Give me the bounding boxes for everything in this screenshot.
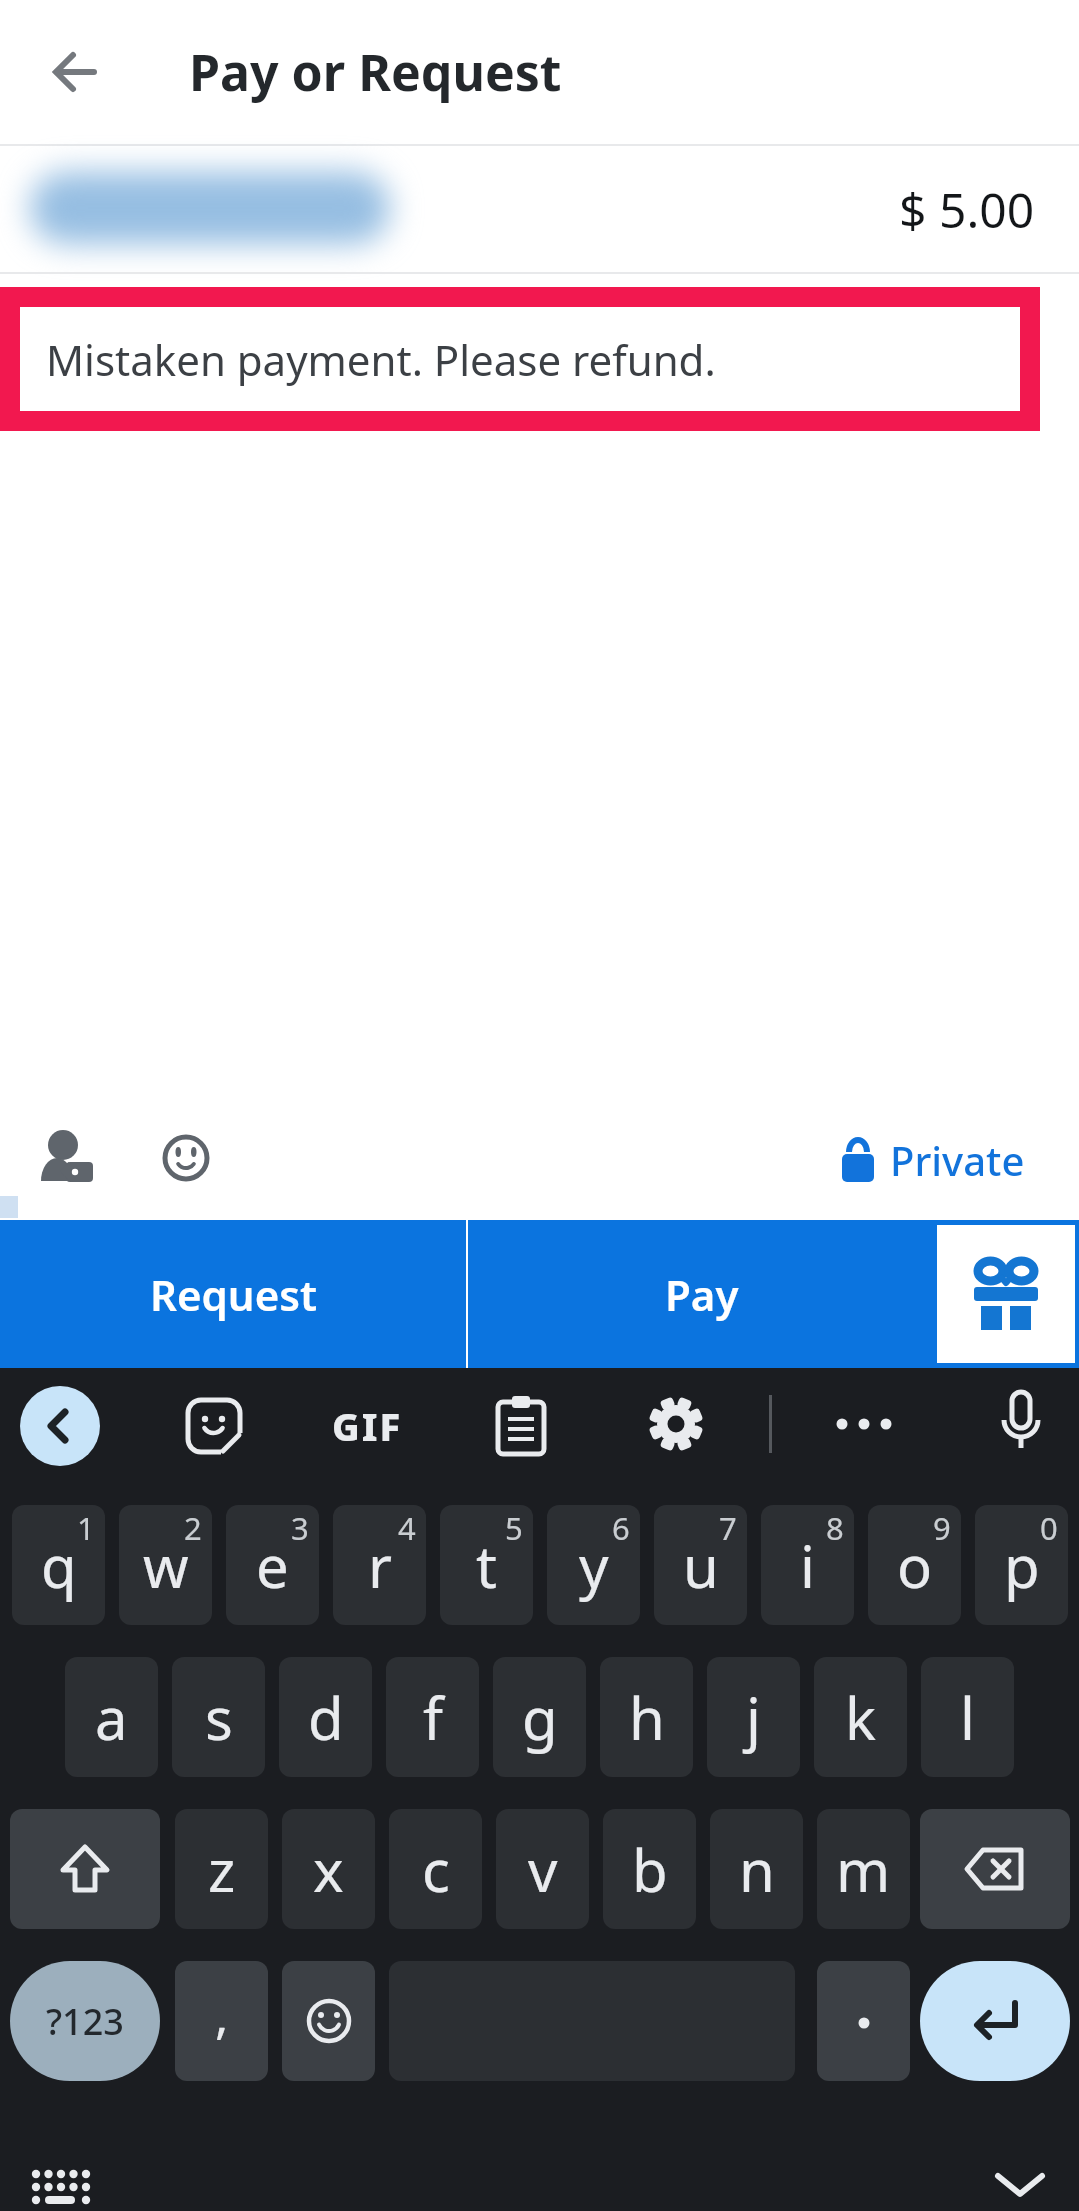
staticText: , [215,1981,229,2049]
staticText: o [897,1526,933,1605]
button[interactable]: ?123 [10,1961,160,2081]
button[interactable] [830,1412,900,1436]
button[interactable]: j [707,1657,800,1777]
staticText: 0 [1040,1507,1058,1549]
staticText: l [960,1678,975,1757]
staticText: q [41,1526,77,1605]
button[interactable] [920,1961,1070,2081]
staticText: m [836,1830,891,1909]
button[interactable]: , [175,1961,268,2081]
staticText: 1 [77,1507,95,1549]
staticText: 2 [184,1507,202,1549]
staticText: ?123 [46,1997,124,2046]
button[interactable]: Request [0,1220,466,1368]
staticText: t [476,1526,497,1605]
button[interactable]: Pay [468,1220,935,1368]
button[interactable]: a [65,1657,158,1777]
staticText: 7 [719,1507,737,1549]
button[interactable] [920,1809,1070,1929]
staticText: e [256,1526,289,1605]
button[interactable]: h [600,1657,693,1777]
staticText: i [800,1526,815,1605]
staticText: z [208,1830,236,1909]
staticText: p [1004,1526,1040,1605]
button[interactable]: y [547,1505,640,1625]
staticText: 8 [826,1507,844,1549]
button[interactable]: t [440,1505,533,1625]
staticText: 3 [291,1507,309,1549]
staticText: j [746,1678,761,1757]
staticText: a [95,1678,128,1757]
button[interactable] [32,2168,92,2208]
button[interactable]: n [710,1809,803,1929]
button[interactable] [935,1220,1079,1368]
button[interactable]: g [493,1657,586,1777]
staticText: h [629,1678,665,1757]
staticText: 9 [933,1507,951,1549]
button[interactable]: r [333,1505,426,1625]
staticText: n [739,1830,775,1909]
staticText: f [423,1678,443,1757]
staticText: g [522,1678,558,1757]
button[interactable]: b [603,1809,696,1929]
button[interactable] [990,2162,1050,2202]
button[interactable]: s [172,1657,265,1777]
button[interactable]: f [386,1657,479,1777]
staticText: r [368,1526,392,1605]
staticText: d [308,1678,344,1757]
button[interactable] [495,1395,547,1457]
button[interactable] [282,1961,375,2081]
button[interactable]: e [226,1505,319,1625]
button[interactable] [817,1961,910,2081]
staticText: w [143,1526,189,1605]
staticText: x [313,1830,344,1909]
button[interactable] [30,172,390,244]
staticText: u [683,1526,719,1605]
button[interactable]: o [868,1505,961,1625]
button[interactable]: q [12,1505,105,1625]
button[interactable]: l [921,1657,1014,1777]
button[interactable]: i [761,1505,854,1625]
staticText: Pay or Request [189,38,562,106]
button[interactable]: d [279,1657,372,1777]
button[interactable] [162,1134,210,1182]
staticText: Private [890,1133,1025,1187]
button[interactable]: GIF [320,1398,415,1454]
staticText: 4 [398,1507,416,1549]
staticText: y [579,1526,609,1605]
button[interactable] [185,1397,243,1455]
button[interactable]: m [817,1809,910,1929]
button[interactable] [20,1386,100,1466]
button[interactable] [10,1809,160,1929]
button[interactable] [997,1390,1045,1462]
button[interactable] [53,50,97,94]
staticText: GIF [332,1400,403,1452]
button[interactable] [36,1116,100,1186]
staticText: s [205,1678,233,1757]
button[interactable]: k [814,1657,907,1777]
staticText: Pay [665,1266,739,1323]
staticText: b [632,1830,668,1909]
staticText: 6 [612,1507,630,1549]
button[interactable]: w [119,1505,212,1625]
button[interactable]: x [282,1809,375,1929]
button[interactable]: Private [0,1128,1025,1192]
button[interactable]: v [496,1809,589,1929]
staticText: 5 [505,1507,523,1549]
button[interactable]: u [654,1505,747,1625]
button[interactable]: z [175,1809,268,1929]
staticText: v [528,1830,558,1909]
staticText: Request [150,1266,317,1323]
staticText: Mistaken payment. Please refund. [46,331,716,388]
staticText: $ 5.00 [899,177,1035,242]
staticText: c [422,1830,450,1909]
button[interactable]: c [389,1809,482,1929]
button[interactable]: p [975,1505,1068,1625]
staticText: k [845,1678,876,1757]
button[interactable] [647,1395,705,1453]
